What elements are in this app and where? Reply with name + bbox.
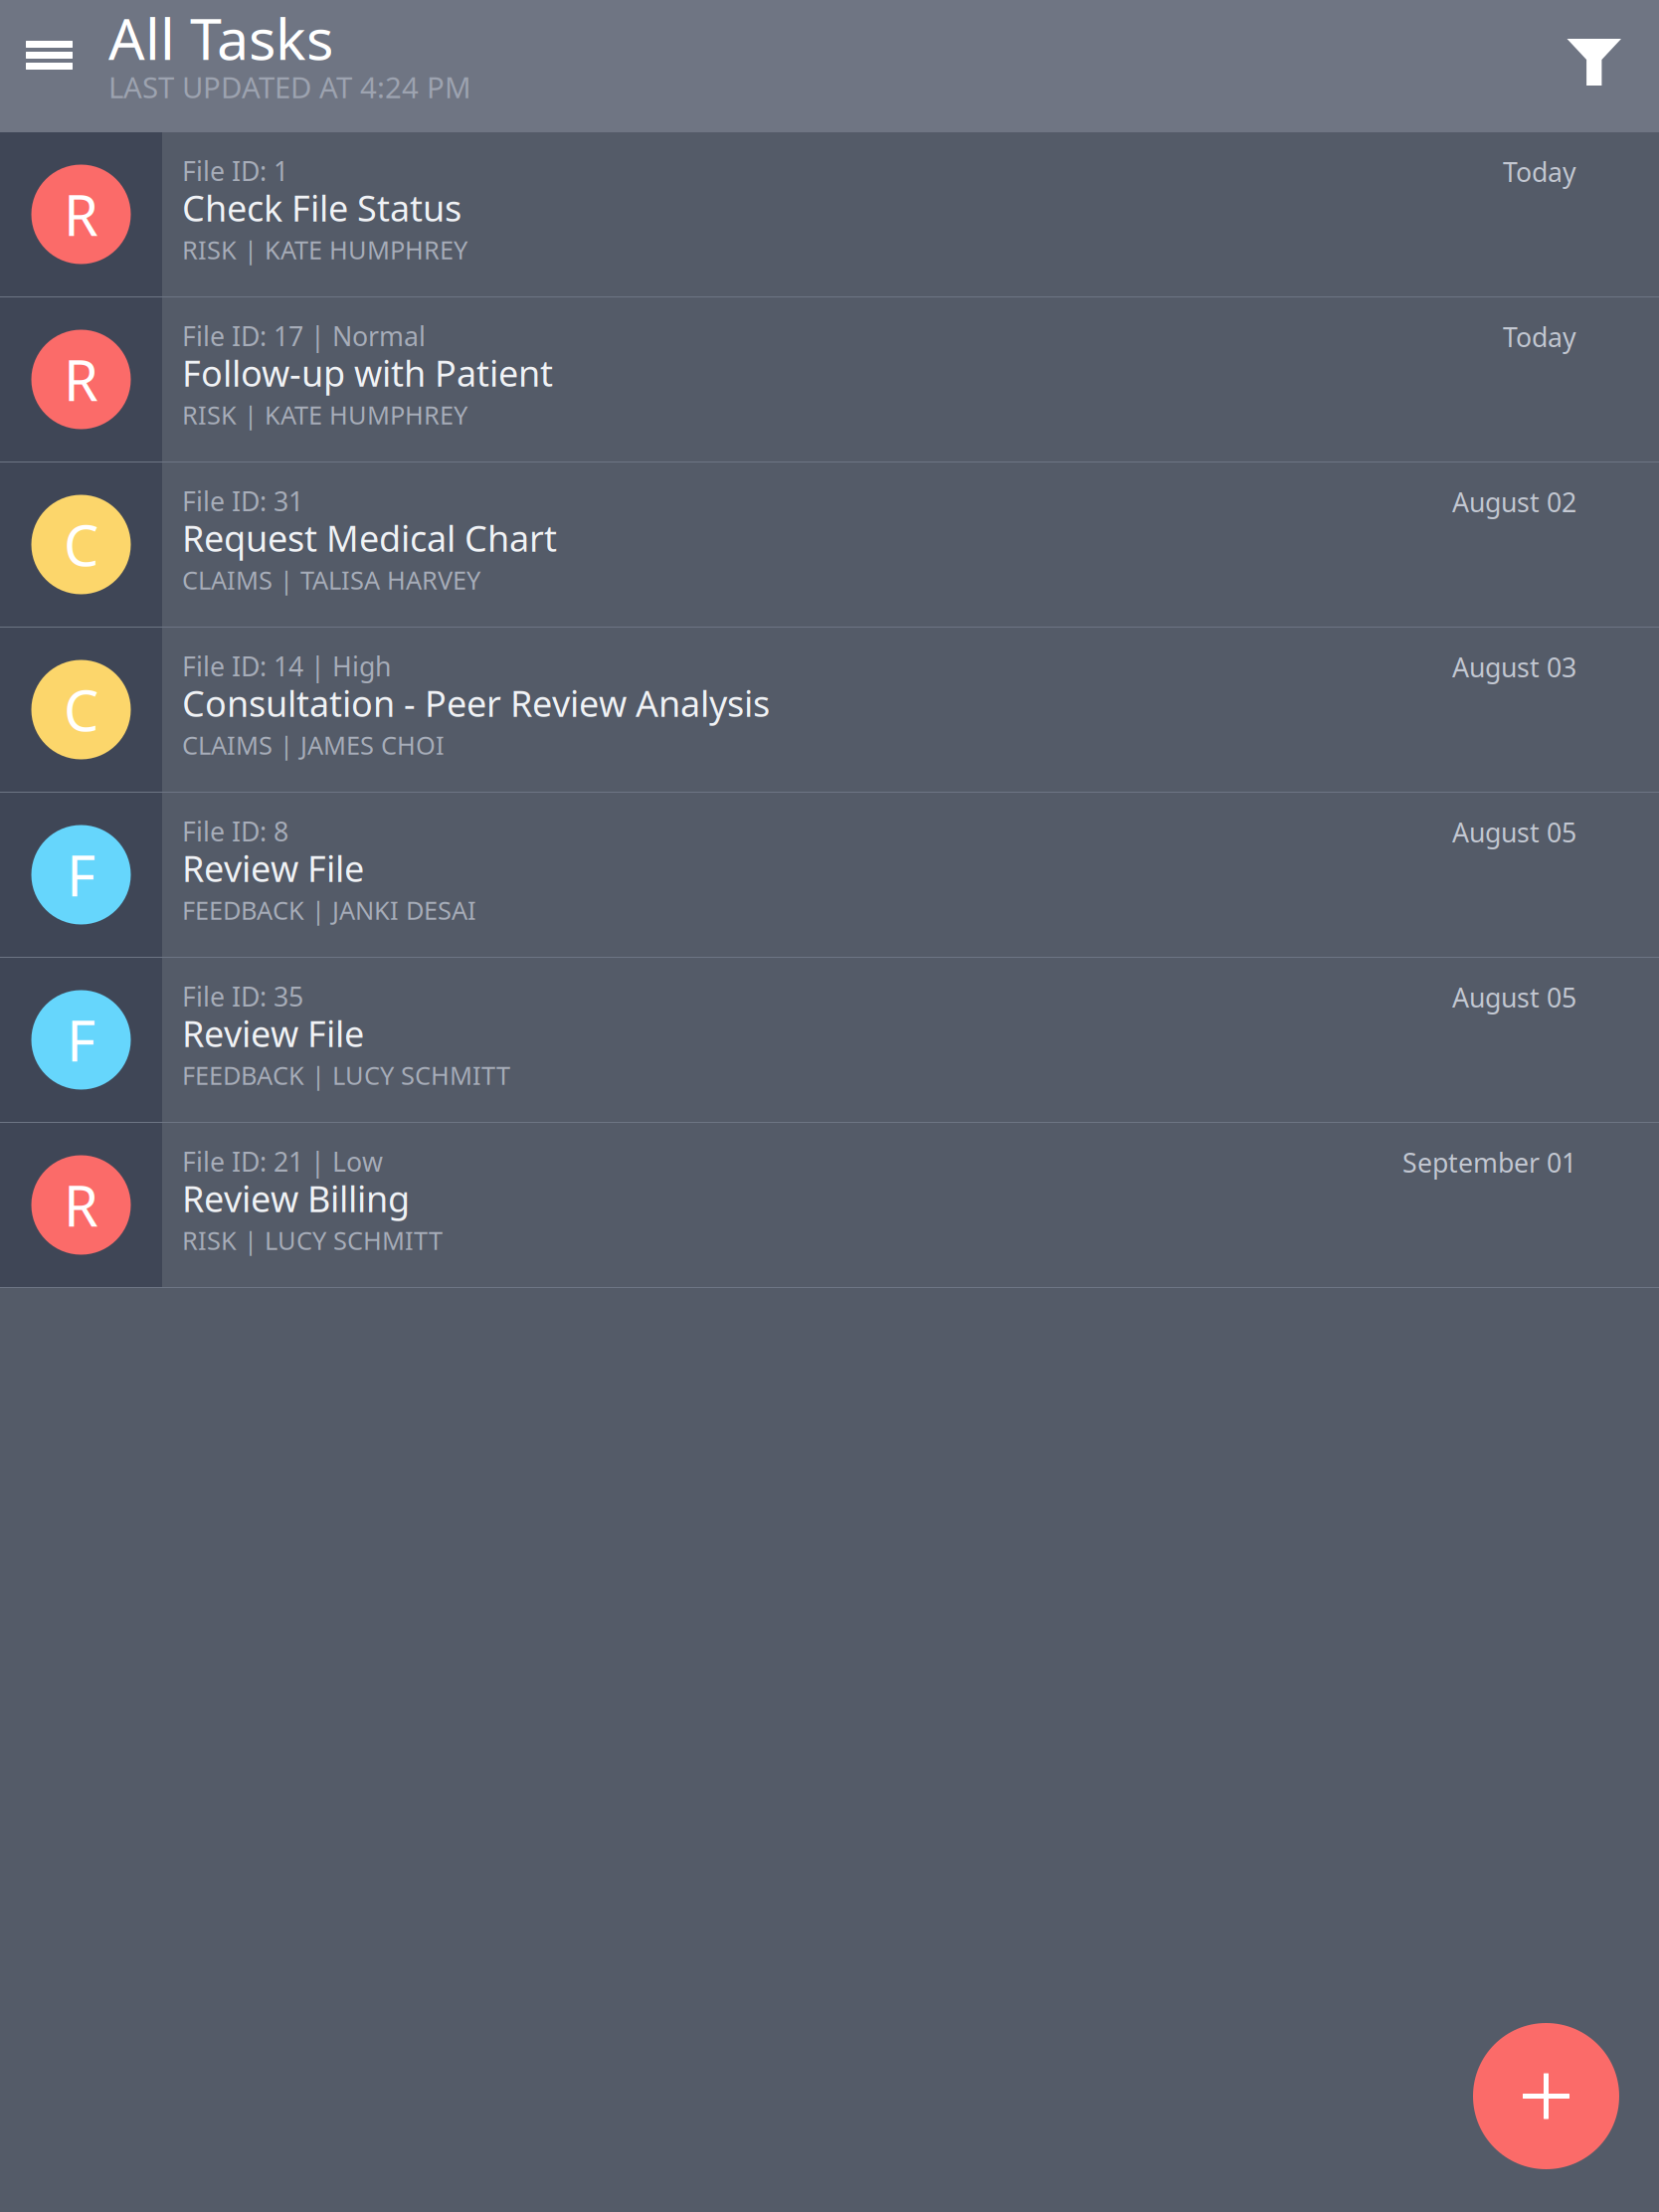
staticText: Request Medical Chart <box>182 514 557 562</box>
staticText: Review File <box>182 1010 364 1057</box>
staticText: C <box>64 673 98 747</box>
staticText: File ID: 21 | Low <box>182 1144 383 1179</box>
button[interactable]: F <box>0 958 1659 1122</box>
staticText: Review Billing <box>182 1175 410 1222</box>
staticText: File ID: 8 <box>182 814 288 849</box>
staticText: Check File Status <box>182 184 461 232</box>
staticText: R <box>64 177 98 251</box>
staticText: C <box>64 508 98 582</box>
button[interactable]: R <box>0 132 1659 296</box>
staticText: LAST UPDATED AT 4:24 PM <box>108 68 471 106</box>
button[interactable]: Filter <box>1531 0 1659 132</box>
button[interactable]: Add task <box>1473 2023 1619 2169</box>
staticText: File ID: 35 <box>182 979 303 1014</box>
staticText: August 03 <box>1452 649 1576 685</box>
staticText: August 02 <box>1452 484 1576 520</box>
staticText: Follow-up with Patient <box>182 349 553 397</box>
staticText: File ID: 1 <box>182 153 288 188</box>
button[interactable]: F <box>0 793 1659 957</box>
staticText: Today <box>1503 154 1576 189</box>
staticText: File ID: 17 | Normal <box>182 318 426 353</box>
button[interactable]: C <box>0 628 1659 792</box>
staticText: RISK | LUCY SCHMITT <box>182 1223 443 1257</box>
staticText: CLAIMS | JAMES CHOI <box>182 728 445 761</box>
button[interactable]: Menu <box>0 0 108 132</box>
staticText: CLAIMS | TALISA HARVEY <box>182 563 480 596</box>
staticText: August 05 <box>1452 815 1576 850</box>
staticText: September 01 <box>1402 1145 1576 1180</box>
staticText: All Tasks <box>108 0 333 76</box>
button[interactable]: R <box>0 297 1659 461</box>
staticText: FEEDBACK | LUCY SCHMITT <box>182 1058 510 1092</box>
staticText: August 05 <box>1452 980 1576 1015</box>
button[interactable]: R <box>0 1123 1659 1287</box>
staticText: F <box>67 838 95 912</box>
staticText: Review File <box>182 844 364 892</box>
staticText: File ID: 14 | High <box>182 648 391 684</box>
staticText: Today <box>1503 319 1576 354</box>
staticText: R <box>64 342 98 416</box>
staticText: FEEDBACK | JANKI DESAI <box>182 893 476 927</box>
button[interactable]: C <box>0 462 1659 627</box>
staticText: R <box>64 1168 98 1242</box>
staticText: File ID: 31 <box>182 483 303 519</box>
staticText: RISK | KATE HUMPHREY <box>182 233 467 266</box>
staticText: F <box>67 1003 95 1077</box>
staticText: RISK | KATE HUMPHREY <box>182 398 467 431</box>
staticText: Consultation - Peer Review Analysis <box>182 679 770 727</box>
